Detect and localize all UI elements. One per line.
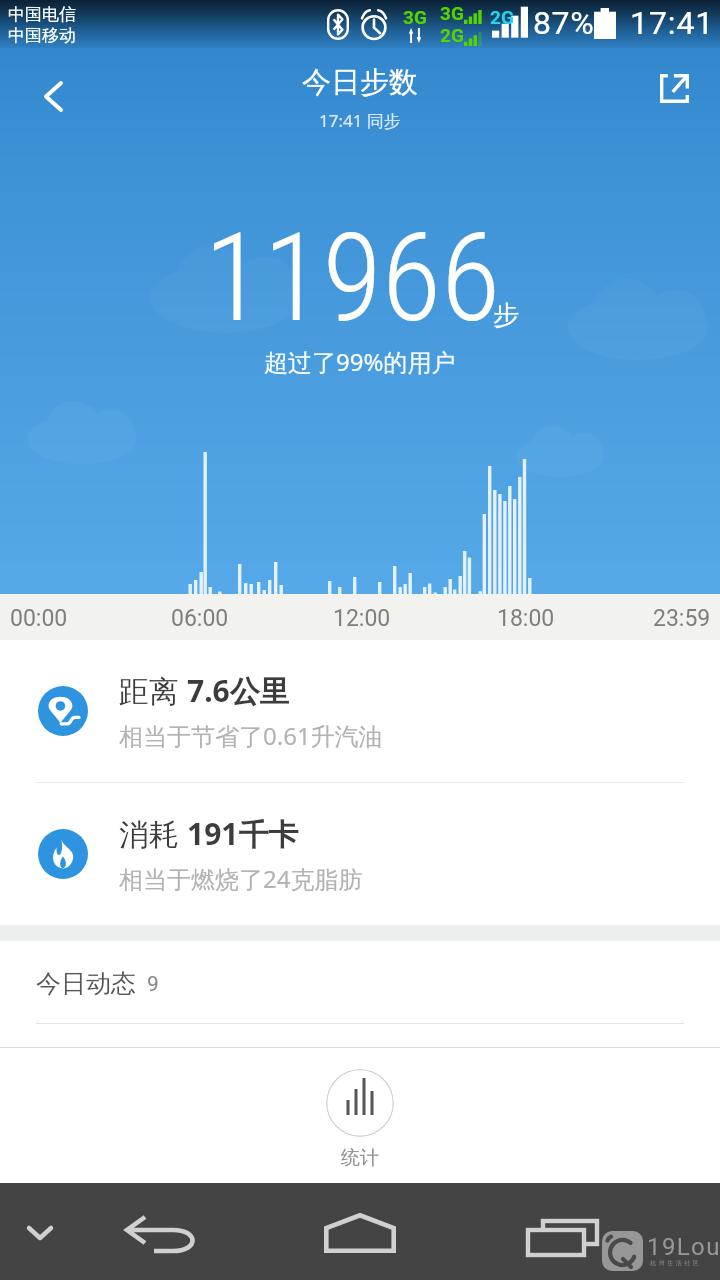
button[interactable]: 消耗 (0, 783, 720, 925)
button[interactable]: Share (643, 60, 705, 122)
button[interactable]: Home (318, 1208, 402, 1258)
staticText: 相当于燃烧了24克脂肪 (119, 862, 363, 895)
staticText: 中国电信 (8, 4, 76, 25)
staticText: 步 (493, 299, 519, 332)
button[interactable]: Hide keyboard (14, 1207, 66, 1259)
staticText: 今日步数 (302, 64, 418, 101)
button[interactable]: Back (22, 60, 84, 122)
staticText: 9 (147, 972, 159, 997)
staticText: 06:00 (171, 605, 229, 632)
staticText: 00:00 (10, 605, 68, 632)
staticText: 191千卡 (187, 813, 299, 854)
staticText: 统计 (341, 1146, 379, 1170)
button[interactable]: 距离 (0, 640, 720, 782)
staticText: 今日动态 (36, 968, 136, 999)
staticText: 17:41 同步 (319, 109, 401, 132)
staticText: 相当于节省了0.61升汽油 (119, 719, 383, 752)
staticText: 12:00 (333, 605, 391, 632)
button[interactable]: Recents (518, 1211, 608, 1257)
staticText: 17:41 (630, 4, 715, 42)
staticText: 杭州生活社区 (649, 1259, 700, 1267)
staticText: 3G (440, 2, 464, 24)
staticText: 2G (440, 24, 464, 46)
staticText: 消耗 (119, 813, 187, 854)
staticText: 距离 (119, 670, 187, 711)
staticText: 11966 (204, 207, 501, 350)
staticText: 7.6公里 (187, 670, 290, 711)
staticText: 23:59 (653, 605, 711, 632)
staticText: 19Lou (647, 1233, 720, 1261)
staticText: 3G (403, 6, 427, 28)
staticText: 2G (490, 6, 514, 28)
button[interactable]: 统计 (326, 1069, 394, 1137)
staticText: 87% (533, 4, 595, 42)
staticText: 18:00 (497, 605, 555, 632)
staticText: 中国移动 (8, 25, 76, 46)
button[interactable]: Back (113, 1205, 205, 1261)
staticText: 超过了99%的用户 (264, 345, 456, 378)
